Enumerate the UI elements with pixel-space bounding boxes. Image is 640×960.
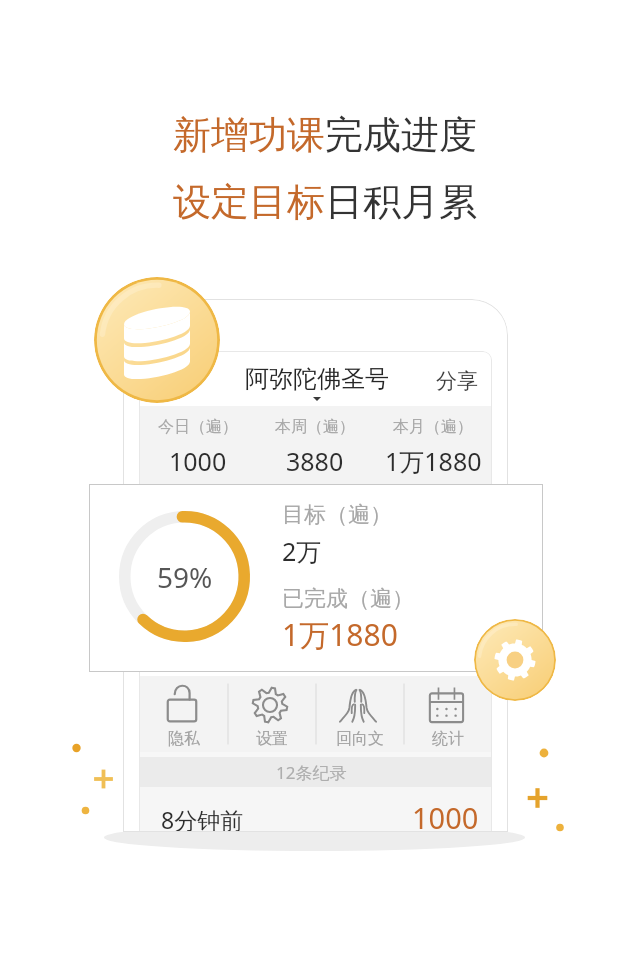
staticText: 1万1880 <box>385 444 482 478</box>
staticText: 1000 <box>169 444 227 478</box>
button[interactable]: 隐私 <box>139 676 228 752</box>
button[interactable]: Records <box>94 277 220 403</box>
staticText: 8分钟前 <box>161 804 244 832</box>
staticText: 本周（遍） <box>275 417 355 437</box>
staticText: 本月（遍） <box>393 417 473 437</box>
staticText: 设定目标日积月累 <box>173 178 477 226</box>
staticText: 1万1880 <box>282 614 398 655</box>
staticText: 隐私 <box>168 729 200 749</box>
staticText: 1000 <box>412 798 479 832</box>
staticText: 阿弥陀佛圣号 <box>245 364 389 394</box>
staticText: 已完成（遍） <box>282 585 414 613</box>
staticText: 分享 <box>436 368 478 394</box>
staticText: 12条纪录 <box>276 761 347 784</box>
staticText: 今日（遍） <box>158 417 238 437</box>
staticText: 新增功课完成进度 <box>173 111 477 159</box>
staticText: 统计 <box>432 729 464 749</box>
staticText: 3880 <box>286 444 344 478</box>
staticText: 目标（遍） <box>282 501 392 529</box>
staticText: 2万 <box>282 534 322 568</box>
button[interactable]: Settings <box>474 619 556 701</box>
staticText: 设置 <box>256 729 288 749</box>
button[interactable]: 设置 <box>228 676 316 752</box>
button[interactable]: 统计 <box>404 676 492 752</box>
staticText: 59% <box>157 558 213 596</box>
button[interactable]: 回向文 <box>316 676 404 752</box>
staticText: 回向文 <box>336 729 384 749</box>
